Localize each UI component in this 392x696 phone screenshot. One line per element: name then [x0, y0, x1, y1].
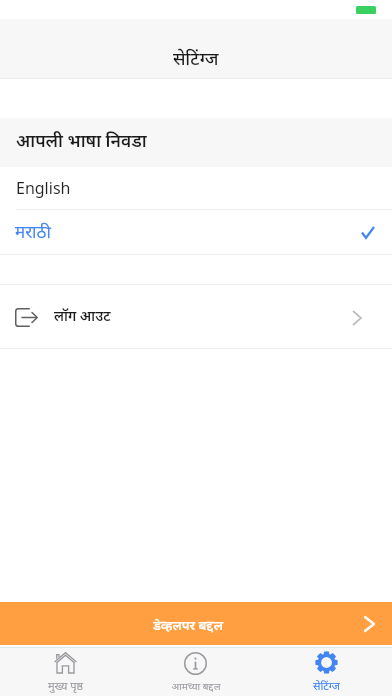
staticText: English — [16, 177, 71, 199]
staticText: मुख्य पृष्ठ — [48, 678, 83, 693]
button[interactable]: मराठी — [0, 210, 392, 255]
staticText: डेव्हलपर बद्दल — [153, 616, 223, 634]
button[interactable]: लॉग आउट — [0, 285, 392, 349]
staticText: मराठी — [15, 220, 51, 243]
button[interactable]: English — [0, 167, 392, 210]
button[interactable]: सेटिंग्ज — [261, 648, 392, 696]
staticText: सेटिंग्ज — [173, 46, 219, 71]
button[interactable]: आमच्या बद्दल — [130, 648, 261, 696]
staticText: आपली भाषा निवडा — [16, 128, 147, 152]
staticText: आमच्या बद्दल — [171, 679, 221, 693]
button[interactable]: मुख्य पृष्ठ — [0, 648, 130, 696]
staticText: सेटिंग्ज — [313, 678, 340, 693]
button[interactable]: डेव्हलपर बद्दल — [0, 602, 392, 645]
staticText: लॉग आउट — [54, 306, 111, 325]
